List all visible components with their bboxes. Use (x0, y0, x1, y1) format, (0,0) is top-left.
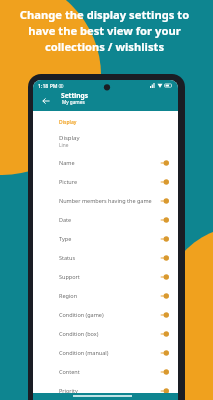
button[interactable]: Number members having the game (33, 191, 178, 210)
staticText: Line (59, 142, 69, 149)
button[interactable]: Name (33, 153, 178, 172)
staticText: Settings (61, 91, 89, 100)
staticText: Date (59, 216, 72, 223)
button[interactable]: Condition (game) (33, 305, 178, 324)
staticText: Name (59, 159, 75, 166)
staticText: Number members having the game (59, 197, 152, 204)
staticText: 1:18 PM (38, 82, 58, 89)
button[interactable]: Condition (box) (33, 324, 178, 343)
button[interactable]: Content (33, 362, 178, 381)
staticText: Content (59, 368, 80, 375)
button[interactable]: Back (39, 90, 53, 111)
staticText: Display (59, 119, 77, 126)
staticText: Picture (59, 178, 78, 185)
button[interactable]: Priority (33, 381, 178, 400)
button[interactable]: Type (33, 229, 178, 248)
button[interactable]: Picture (33, 172, 178, 191)
button[interactable]: Condition (manual) (33, 343, 178, 362)
staticText: Region (59, 292, 78, 299)
staticText: My games (62, 99, 85, 105)
staticText: Condition (box) (59, 330, 99, 337)
staticText: Status (59, 254, 76, 261)
staticText: Type (59, 235, 72, 242)
button[interactable]: Region (33, 286, 178, 305)
staticText: Support (59, 273, 80, 280)
staticText: Priority (59, 387, 78, 394)
staticText: Condition (game) (59, 311, 104, 318)
staticText: Change the display settings to have the … (0, 7, 211, 54)
button[interactable]: Status (33, 248, 178, 267)
button[interactable]: Date (33, 210, 178, 229)
staticText: Display (59, 134, 80, 142)
staticText: Condition (manual) (59, 349, 109, 356)
button[interactable]: Support (33, 267, 178, 286)
